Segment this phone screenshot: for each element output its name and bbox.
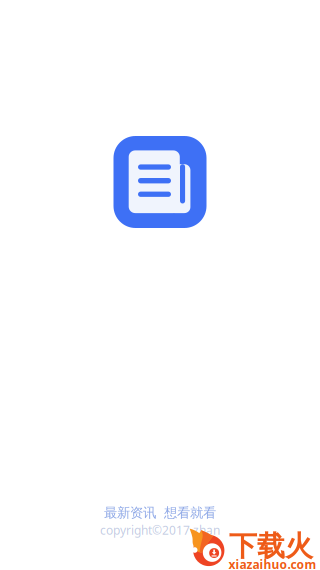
staticText: 最新资讯 想看就看 (104, 505, 216, 521)
staticText: xiazaihuo.com (228, 556, 316, 570)
staticText: 下载火 (229, 529, 313, 563)
button[interactable]: 新闻资讯 (113, 136, 206, 228)
button[interactable]: xiazaihuo.com (190, 527, 318, 569)
staticText: copyright©2017 zhan (100, 522, 220, 538)
